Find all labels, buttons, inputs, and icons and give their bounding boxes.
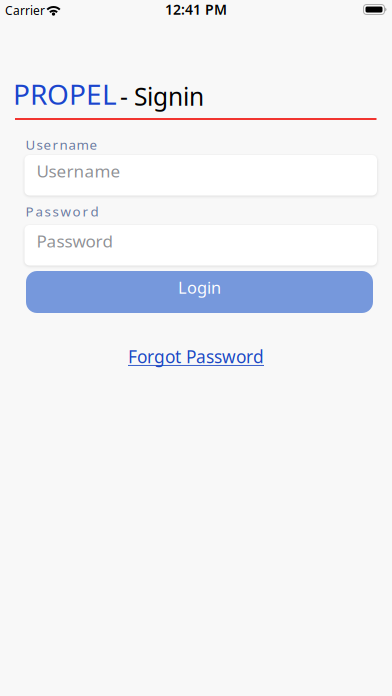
staticText: Login — [178, 277, 221, 298]
button[interactable] — [24, 155, 377, 195]
staticText: U s e r n a m e — [25, 136, 97, 153]
button[interactable]: Login — [26, 271, 373, 313]
staticText: - Signin — [120, 80, 204, 113]
staticText: Carrier — [5, 2, 45, 18]
staticText: 12:41 PM — [165, 0, 227, 19]
staticText: Username — [36, 159, 120, 182]
staticText: PROPEL — [13, 75, 117, 112]
button[interactable] — [24, 225, 377, 265]
button[interactable]: Forgot Password — [128, 345, 264, 368]
staticText: P a s s w o r d — [25, 202, 98, 220]
staticText: Forgot Password — [128, 345, 264, 368]
staticText: Password — [36, 229, 112, 252]
